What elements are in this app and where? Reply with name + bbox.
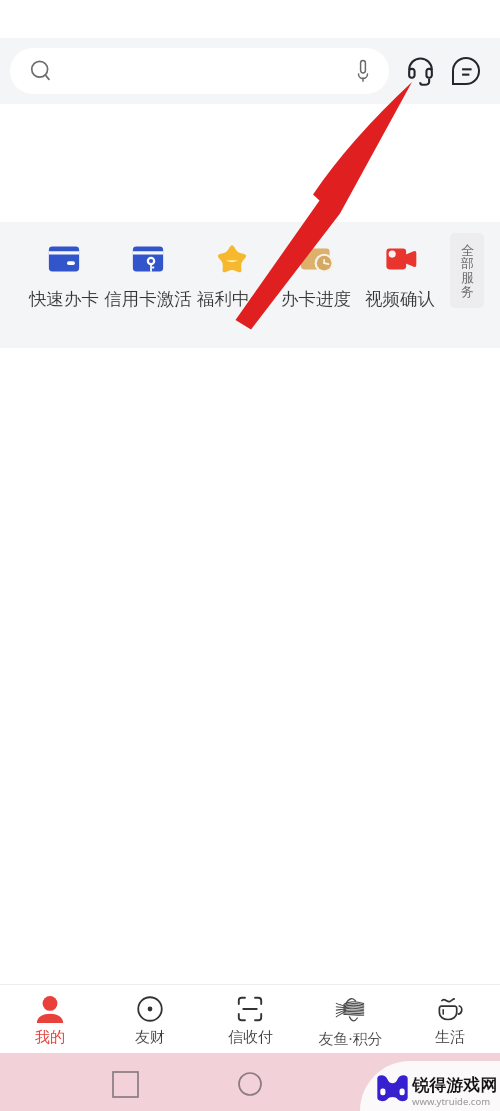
button[interactable]: 全 部 服 务 [450, 233, 484, 308]
button[interactable]: Messages [447, 52, 485, 90]
button[interactable]: 友财 [100, 985, 200, 1047]
button[interactable]: 福利中心 [182, 222, 282, 310]
staticText: 办卡进度 [281, 288, 351, 310]
button[interactable]: 信用卡激活 [98, 222, 198, 310]
staticText: www.ytruide.com [412, 1095, 491, 1108]
staticText: 信收付 [228, 1028, 273, 1047]
staticText: 锐得游戏网 [412, 1075, 497, 1096]
button[interactable]: Customer service [401, 52, 439, 90]
button[interactable]: Recent apps [107, 1066, 143, 1102]
button[interactable]: 信收付 [200, 985, 300, 1047]
staticText: 友财 [135, 1028, 165, 1047]
staticText: 我的 [35, 1028, 65, 1047]
staticText: 信用卡激活 [104, 288, 192, 310]
button[interactable]: 友鱼·积分 [300, 985, 400, 1048]
button[interactable]: 我的 [0, 985, 100, 1047]
button[interactable]: Home [232, 1066, 268, 1102]
staticText: 福利中心 [197, 288, 267, 310]
button[interactable]: 快速办卡 [14, 222, 114, 310]
staticText: 友鱼·积分 [318, 1028, 383, 1048]
button[interactable]: Voice search [10, 48, 389, 94]
button[interactable]: Voice search [348, 56, 378, 86]
staticText: 全 部 服 务 [461, 242, 474, 300]
staticText: 视频确认 [365, 288, 435, 310]
button[interactable]: 生活 [400, 985, 500, 1047]
staticText: 快速办卡 [29, 288, 99, 310]
button[interactable]: 视频确认 [350, 222, 450, 310]
button[interactable]: 办卡进度 [266, 222, 366, 310]
staticText: 生活 [435, 1028, 465, 1047]
